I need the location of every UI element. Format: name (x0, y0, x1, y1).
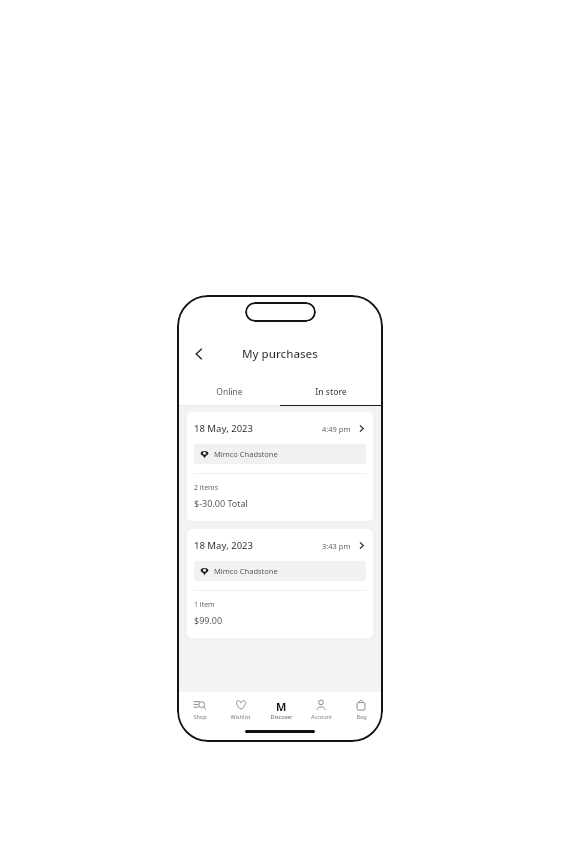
staticText: Wishlist (230, 713, 251, 720)
staticText: Online (216, 386, 243, 398)
button[interactable]: 18 May, 2023 (187, 529, 373, 638)
button[interactable]: Back (185, 340, 213, 368)
button[interactable]: Shop (179, 692, 220, 726)
staticText: Bag (356, 713, 367, 720)
staticText: 18 May, 2023 (194, 422, 253, 435)
staticText: My purchases (242, 346, 318, 362)
staticText: Shop (193, 713, 207, 720)
button[interactable]: Online (179, 379, 280, 405)
staticText: M (276, 699, 287, 711)
staticText: 2 items (194, 483, 219, 493)
staticText: $99.00 (194, 614, 223, 626)
button[interactable]: In store (280, 379, 381, 405)
staticText: $-30.00 Total (194, 497, 248, 509)
staticText: In store (315, 386, 347, 398)
staticText: Mimco Chadstone (214, 566, 278, 576)
button[interactable]: 18 May, 2023 (187, 412, 373, 521)
button[interactable]: Account (301, 692, 341, 726)
staticText: Mimco Chadstone (214, 449, 278, 459)
staticText: 3:43 pm (322, 541, 351, 551)
staticText: 1 item (194, 600, 215, 610)
staticText: Account (311, 713, 332, 720)
staticText: 18 May, 2023 (194, 539, 253, 552)
staticText: Discover (270, 713, 293, 720)
staticText: 4:49 pm (322, 424, 351, 434)
button[interactable]: Bag (341, 692, 381, 726)
button[interactable]: M (261, 692, 301, 726)
button[interactable]: Wishlist (220, 692, 261, 726)
